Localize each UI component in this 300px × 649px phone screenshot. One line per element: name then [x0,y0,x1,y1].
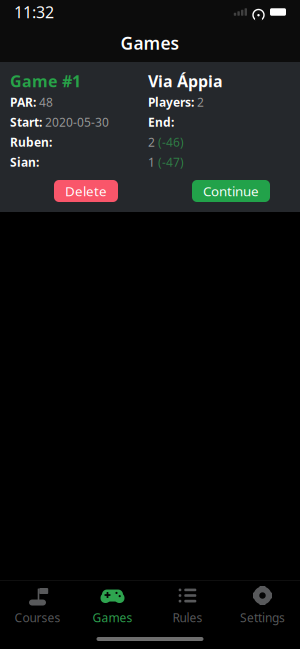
staticText: Games [120,31,179,54]
staticText: Settings [240,609,285,625]
staticText: Courses [14,609,60,625]
button[interactable]: Rules [150,582,225,628]
staticText: 2020-05-30 [45,114,109,130]
button[interactable]: Delete [54,180,118,202]
staticText: (-46) [158,134,184,150]
staticText: Games [92,609,132,625]
staticText: End: [148,114,174,130]
staticText: 1 [148,154,155,170]
staticText: 48 [39,94,53,110]
staticText: Via Áppia [148,70,223,92]
button[interactable]: Games [75,582,150,628]
staticText: (-47) [158,154,184,170]
staticText: Rules [172,609,202,625]
staticText: 11:32 [14,1,54,23]
button[interactable]: Courses [0,582,75,628]
staticText: Ruben: [10,134,52,150]
staticText: 2 [148,134,155,150]
staticText: Start: [10,114,42,130]
staticText: Sian: [10,154,39,170]
staticText: Players: [148,94,194,110]
button[interactable]: Settings [225,582,300,628]
button[interactable]: Continue [192,180,270,202]
staticText: Continue [203,182,259,200]
staticText: 2 [197,94,204,110]
staticText: Game #1 [10,70,81,92]
staticText: Delete [65,182,107,200]
staticText: PAR: [10,94,36,110]
